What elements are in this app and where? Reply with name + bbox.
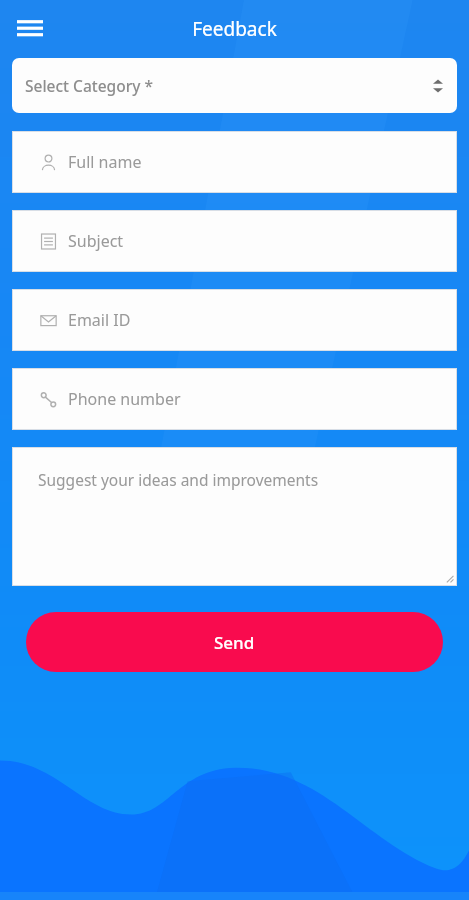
button[interactable]: Phone number xyxy=(12,368,457,430)
staticText: Suggest your ideas and improvements xyxy=(38,469,319,490)
button[interactable]: Send xyxy=(26,612,443,672)
staticText: Select Category * xyxy=(25,75,153,96)
staticText: Phone number xyxy=(68,388,181,410)
staticText: Full name xyxy=(68,151,142,173)
button[interactable]: Suggest your ideas and improvements xyxy=(12,447,457,586)
button[interactable]: Full name xyxy=(12,131,457,193)
staticText: Feedback xyxy=(192,16,277,42)
button[interactable]: Open navigation menu xyxy=(8,7,52,51)
staticText: Subject xyxy=(68,230,124,252)
button[interactable]: Subject xyxy=(12,210,457,272)
staticText: Email ID xyxy=(68,309,131,331)
button[interactable]: Email ID xyxy=(12,289,457,351)
button[interactable]: Select Category * xyxy=(12,58,457,113)
staticText: Send xyxy=(214,631,255,654)
